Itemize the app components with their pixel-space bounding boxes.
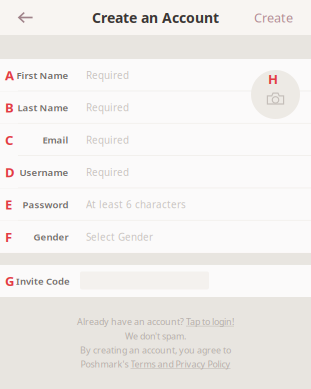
staticText: C <box>5 131 13 149</box>
staticText: Select Gender <box>86 230 153 243</box>
staticText: Invite Code <box>16 274 70 287</box>
staticText: Required <box>86 133 129 146</box>
staticText: We don't spam. <box>125 330 186 342</box>
button[interactable]: D <box>0 156 311 188</box>
button[interactable]: A <box>0 59 311 91</box>
staticText: G <box>5 272 14 290</box>
staticText: By creating an account, you agree to <box>80 344 231 356</box>
staticText: Password <box>22 198 68 211</box>
button[interactable]: G <box>0 265 311 297</box>
staticText: Create an Account <box>92 8 219 27</box>
button[interactable]: F <box>0 221 311 253</box>
staticText: E <box>5 196 12 213</box>
staticText: Email <box>42 133 68 146</box>
button[interactable]: Create <box>254 0 311 35</box>
staticText: B <box>5 99 14 116</box>
staticText: Required <box>86 68 129 82</box>
button[interactable]: Add profile photo <box>251 70 300 119</box>
staticText: Gender <box>33 230 68 243</box>
staticText: Last Name <box>17 101 68 114</box>
staticText: Required <box>86 101 129 114</box>
staticText: Already have an account? Tap to login! <box>77 315 234 328</box>
staticText: Required <box>86 165 129 179</box>
staticText: A <box>5 66 14 84</box>
staticText: F <box>5 228 12 246</box>
staticText: Username <box>19 166 68 179</box>
staticText: Poshmark's Terms and Privacy Policy <box>80 358 230 370</box>
staticText: D <box>5 163 15 181</box>
button[interactable]: Poshmark's Terms and Privacy Policy <box>0 357 311 371</box>
button[interactable]: E <box>0 188 311 221</box>
staticText: H <box>268 70 278 88</box>
button[interactable]: Already have an account? Tap to login! <box>0 314 311 329</box>
button[interactable]: Back <box>0 0 44 35</box>
staticText: First Name <box>16 69 68 82</box>
button[interactable]: C <box>0 124 311 156</box>
staticText: At least 6 characters <box>86 198 186 211</box>
button[interactable]: B <box>0 91 311 124</box>
staticText: Create <box>254 9 293 26</box>
